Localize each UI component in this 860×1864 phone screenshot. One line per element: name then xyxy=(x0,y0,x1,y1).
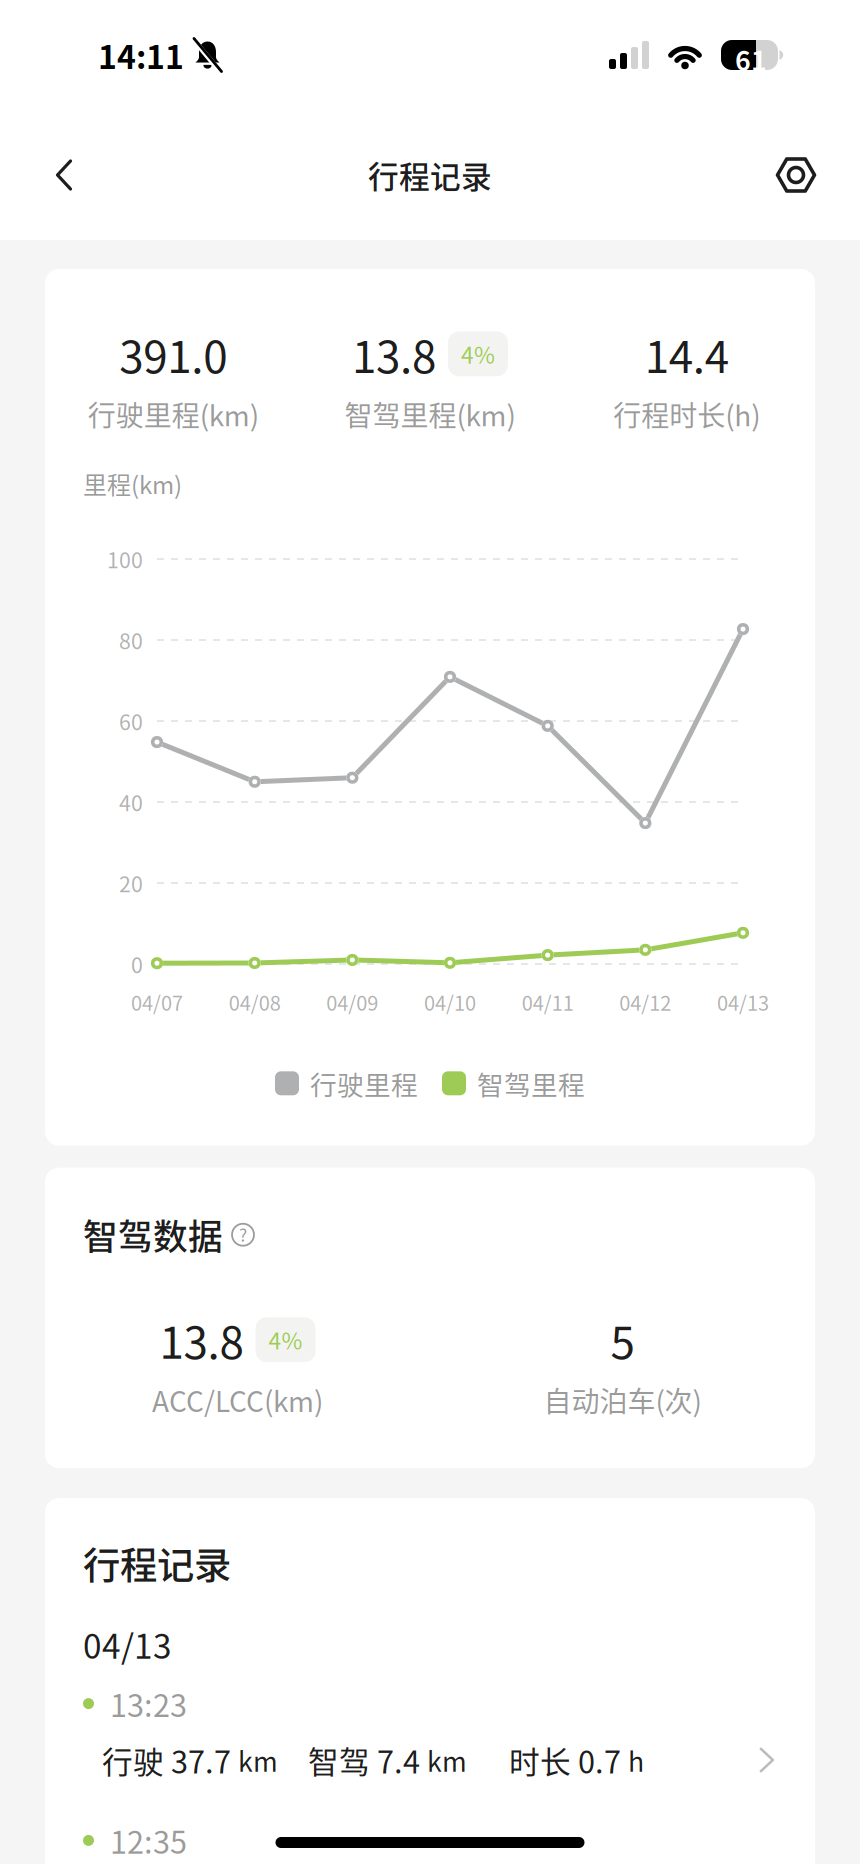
staticText: ? xyxy=(239,1222,247,1247)
staticText: 0.7 xyxy=(571,1738,628,1782)
staticText: 行驶里程(km) xyxy=(88,394,259,434)
staticText: 80 xyxy=(119,625,143,655)
staticText: 40 xyxy=(119,787,143,817)
staticText: 5 xyxy=(610,1308,634,1371)
staticText: 04/10 xyxy=(424,987,476,1016)
staticText: 391.0 xyxy=(119,322,227,386)
staticText: 智驾里程(km) xyxy=(344,394,515,434)
staticText: 13:23 xyxy=(110,1681,187,1726)
staticText: 04/08 xyxy=(229,987,281,1016)
staticText: 行驶里程 xyxy=(310,1064,418,1103)
staticText: 13.8 xyxy=(159,1308,243,1371)
button[interactable]: 13:23 xyxy=(83,1668,777,1782)
button[interactable]: Settings xyxy=(768,147,824,203)
staticText: 14:11 xyxy=(98,32,184,78)
staticText: km xyxy=(238,1741,278,1779)
staticText: 60 xyxy=(119,706,143,736)
staticText: 12:35 xyxy=(110,1818,187,1863)
staticText: 13.8 xyxy=(352,322,436,386)
staticText: 行程时长(h) xyxy=(613,394,760,434)
staticText: 智驾里程 xyxy=(477,1064,585,1103)
staticText: 61 xyxy=(735,40,767,78)
staticText: 20 xyxy=(119,868,143,898)
staticText: 行程记录 xyxy=(83,1536,231,1590)
staticText: 智驾数据 xyxy=(83,1210,223,1260)
staticText: 时长 xyxy=(509,1738,571,1782)
staticText: 0 xyxy=(131,949,143,979)
staticText: 里程(km) xyxy=(83,466,182,501)
staticText: 37.7 xyxy=(164,1738,238,1782)
staticText: 行驶 xyxy=(102,1738,164,1782)
staticText: 04/13 xyxy=(83,1620,172,1668)
staticText: ACC/LCC(km) xyxy=(152,1379,323,1420)
staticText: 智驾 xyxy=(308,1738,370,1782)
staticText: 04/13 xyxy=(717,987,769,1016)
staticText: 4% xyxy=(268,1323,302,1356)
staticText: 7.4 xyxy=(370,1738,427,1782)
staticText: 04/07 xyxy=(131,987,183,1016)
staticText: 自动泊车(次) xyxy=(543,1379,701,1420)
staticText: 04/09 xyxy=(326,987,378,1016)
staticText: 04/12 xyxy=(619,987,671,1016)
staticText: 14.4 xyxy=(645,322,729,386)
staticText: h xyxy=(628,1741,644,1779)
staticText: 4% xyxy=(461,337,495,370)
staticText: 100 xyxy=(107,544,143,574)
staticText: 行程记录 xyxy=(368,153,492,197)
staticText: 04/11 xyxy=(522,987,574,1016)
staticText: km xyxy=(427,1741,467,1779)
button[interactable]: Back xyxy=(36,147,92,203)
